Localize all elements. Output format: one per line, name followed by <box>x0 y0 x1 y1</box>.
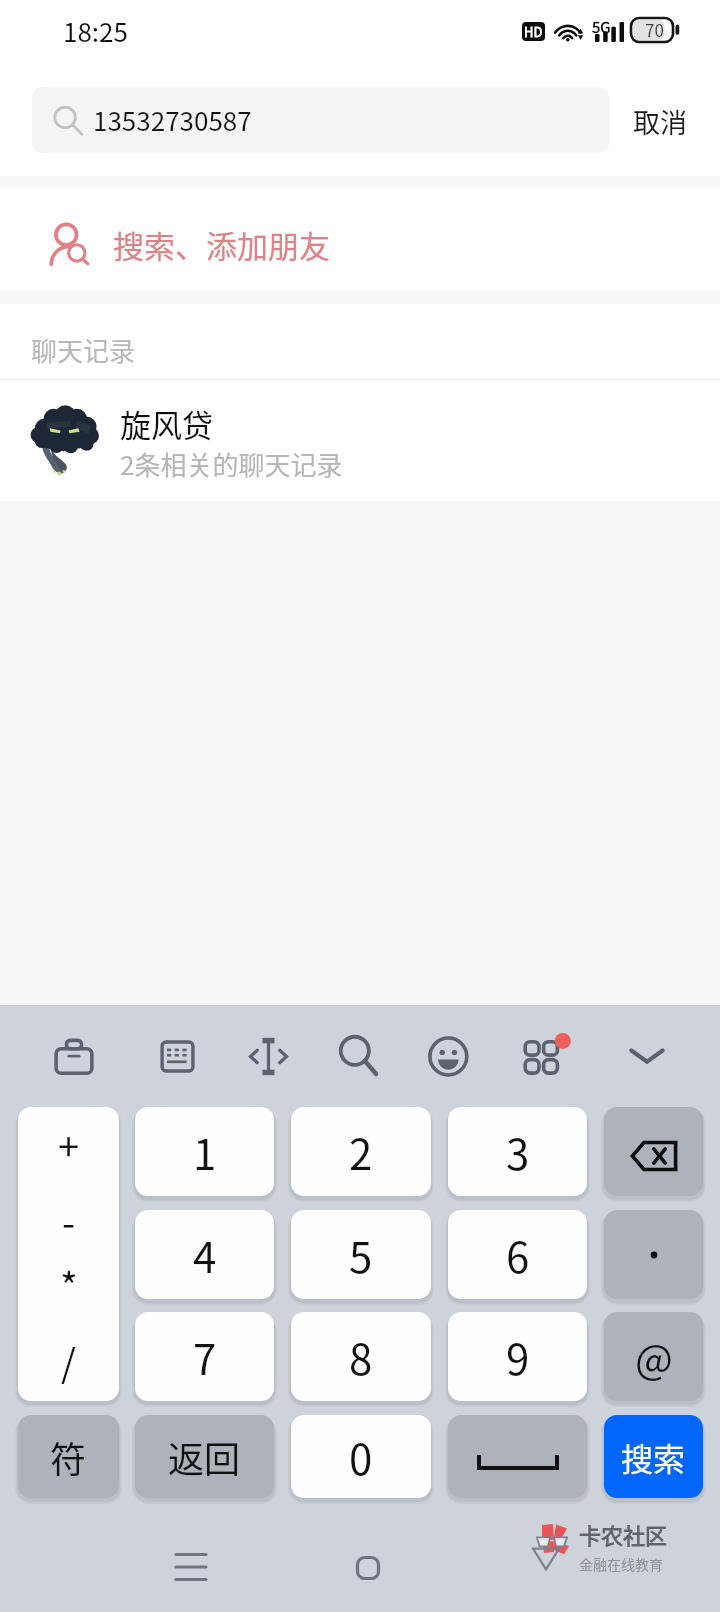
button[interactable]: Delete <box>604 1107 703 1196</box>
staticText: * <box>60 1257 78 1309</box>
button[interactable]: Search <box>330 1027 388 1085</box>
staticText: 搜索 <box>621 1434 686 1480</box>
button[interactable]: 4 <box>135 1210 274 1299</box>
button[interactable]: Keyboard <box>148 1027 206 1085</box>
staticText: 2 <box>349 1121 373 1182</box>
button[interactable]: 符 <box>18 1415 119 1498</box>
staticText: 搜索、添加朋友 <box>113 222 330 267</box>
button[interactable]: @ <box>604 1312 703 1401</box>
button[interactable]: 6 <box>448 1210 587 1299</box>
staticText: 9 <box>506 1326 530 1387</box>
button[interactable]: Operators <box>18 1107 119 1401</box>
staticText: 7 <box>193 1326 217 1387</box>
button[interactable]: 13532730587 <box>32 87 609 153</box>
staticText: HD <box>524 22 543 41</box>
button[interactable]: Space <box>448 1415 587 1498</box>
button[interactable]: Emoji <box>421 1027 479 1085</box>
button[interactable]: 旋风贷 <box>0 381 720 501</box>
staticText: 4 <box>193 1224 217 1285</box>
staticText: + <box>58 1117 80 1169</box>
button[interactable]: Recents <box>176 1553 206 1581</box>
staticText: 8 <box>349 1326 373 1387</box>
staticText: 符 <box>50 1431 87 1483</box>
staticText: 卡农社区 <box>579 1518 668 1550</box>
staticText: 0 <box>349 1426 373 1487</box>
button[interactable]: 8 <box>291 1312 431 1401</box>
staticText: 5 <box>349 1224 373 1285</box>
button[interactable]: 搜索 <box>604 1415 703 1498</box>
staticText: 3 <box>506 1121 530 1182</box>
button[interactable]: 1 <box>135 1107 274 1196</box>
staticText: 2条相关的聊天记录 <box>120 445 343 483</box>
staticText: 5G <box>592 16 611 38</box>
button[interactable]: Hide keyboard <box>618 1027 676 1085</box>
staticText: 聊天记录 <box>31 331 136 369</box>
staticText: - <box>62 1193 76 1245</box>
button[interactable]: 返回 <box>135 1415 274 1498</box>
staticText: 金融在线教育 <box>579 1554 663 1574</box>
button[interactable]: Dot <box>604 1210 703 1299</box>
button[interactable]: 3 <box>448 1107 587 1196</box>
button[interactable]: Cursor <box>239 1027 297 1085</box>
button[interactable]: 0 <box>291 1415 431 1498</box>
staticText: 13532730587 <box>93 101 252 139</box>
button[interactable]: 取消 <box>622 97 698 145</box>
staticText: / <box>61 1333 76 1385</box>
button[interactable]: More <box>513 1027 571 1085</box>
button[interactable]: Home <box>356 1556 380 1580</box>
staticText: 取消 <box>633 102 687 141</box>
button[interactable]: Clipboard <box>45 1027 103 1085</box>
staticText: 1 <box>193 1121 217 1182</box>
staticText: 6 <box>506 1224 530 1285</box>
button[interactable]: 7 <box>135 1312 274 1401</box>
button[interactable]: 2 <box>291 1107 431 1196</box>
staticText: 70 <box>645 17 664 41</box>
button[interactable]: 5 <box>291 1210 431 1299</box>
button[interactable]: 9 <box>448 1312 587 1401</box>
staticText: @ <box>635 1328 673 1386</box>
staticText: 18:25 <box>63 12 128 50</box>
button[interactable]: 搜索、添加朋友 <box>0 193 720 296</box>
staticText: 返回 <box>168 1431 241 1483</box>
staticText: 旋风贷 <box>120 401 213 446</box>
